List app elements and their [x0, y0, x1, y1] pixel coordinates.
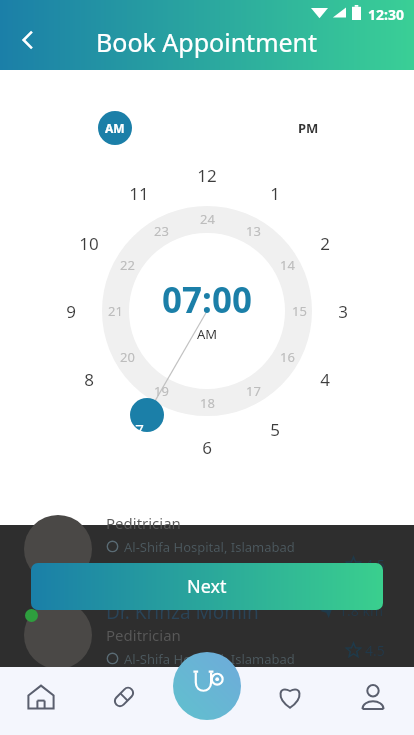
button[interactable]: 14: [272, 253, 302, 277]
button[interactable]: 15: [284, 299, 314, 323]
button[interactable]: 1: [258, 179, 292, 207]
staticText: 12:30: [368, 5, 404, 24]
staticText: 18: [200, 394, 215, 412]
staticText: 4.5: [365, 641, 385, 660]
button[interactable]: 7: [122, 415, 156, 443]
staticText: 20: [120, 348, 135, 366]
staticText: 8: [84, 368, 94, 391]
button[interactable]: 22: [112, 253, 142, 277]
staticText: 7: [135, 419, 144, 439]
staticText: 4.5: [365, 555, 385, 574]
staticText: 1: [270, 182, 280, 205]
button[interactable]: 2: [308, 229, 342, 257]
button[interactable]: Next: [31, 563, 383, 610]
staticText: 11: [129, 182, 149, 205]
staticText: PM: [298, 119, 319, 137]
button[interactable]: 12: [190, 161, 224, 189]
button[interactable]: 16: [272, 345, 302, 369]
button[interactable]: 8: [72, 365, 106, 393]
staticText: 12: [197, 164, 217, 187]
staticText: 5: [270, 418, 280, 441]
staticText: 2: [320, 232, 330, 255]
button[interactable]: 19: [146, 379, 176, 403]
button[interactable]: Profile: [331, 667, 414, 735]
staticText: AM: [197, 325, 218, 343]
button[interactable]: PM: [288, 111, 328, 145]
staticText: Peditrician: [106, 513, 181, 533]
staticText: Al-Shifa Hospital, Islamabad: [124, 650, 295, 668]
staticText: 14: [280, 256, 295, 274]
button[interactable]: Medicine: [82, 667, 165, 735]
staticText: 19: [154, 382, 169, 400]
staticText: 1.8 km: [339, 601, 383, 620]
staticText: Next: [187, 574, 227, 599]
staticText: 13: [246, 222, 261, 240]
staticText: 22: [120, 256, 135, 274]
staticText: 16: [280, 348, 295, 366]
staticText: 23: [154, 222, 169, 240]
button[interactable]: 13: [238, 219, 268, 243]
staticText: 24: [200, 210, 215, 228]
button[interactable]: 3: [326, 297, 360, 325]
staticText: Book Appointment: [96, 25, 318, 59]
staticText: Al-Shifa Hospital, Islamabad: [124, 538, 295, 556]
staticText: 10: [79, 232, 99, 255]
button[interactable]: AM: [98, 111, 132, 145]
staticText: Peditrician: [106, 625, 181, 645]
button[interactable]: 21: [100, 299, 130, 323]
staticText: 07:00: [162, 276, 252, 324]
button[interactable]: Favourites: [248, 667, 331, 735]
button[interactable]: 20: [112, 345, 142, 369]
staticText: 3: [338, 300, 348, 323]
staticText: AM: [105, 120, 125, 136]
button[interactable]: Find a doctor: [173, 652, 241, 720]
button[interactable]: 4: [308, 365, 342, 393]
button[interactable]: 17: [238, 379, 268, 403]
staticText: 17: [246, 382, 261, 400]
staticText: 15: [292, 302, 307, 320]
button[interactable]: 9: [54, 297, 88, 325]
button[interactable]: 23: [146, 219, 176, 243]
button[interactable]: Home: [0, 667, 82, 735]
button[interactable]: 18: [192, 391, 222, 415]
staticText: Dr. Krinza Momin: [106, 599, 259, 625]
button[interactable]: 11: [122, 179, 156, 207]
staticText: 21: [108, 302, 123, 320]
button[interactable]: 5: [258, 415, 292, 443]
staticText: 9: [66, 300, 76, 323]
staticText: 4: [320, 368, 330, 391]
button[interactable]: 10: [72, 229, 106, 257]
button[interactable]: 6: [190, 433, 224, 461]
button[interactable]: 24: [192, 207, 222, 231]
staticText: 6: [202, 436, 212, 459]
button[interactable]: Back: [4, 16, 52, 64]
